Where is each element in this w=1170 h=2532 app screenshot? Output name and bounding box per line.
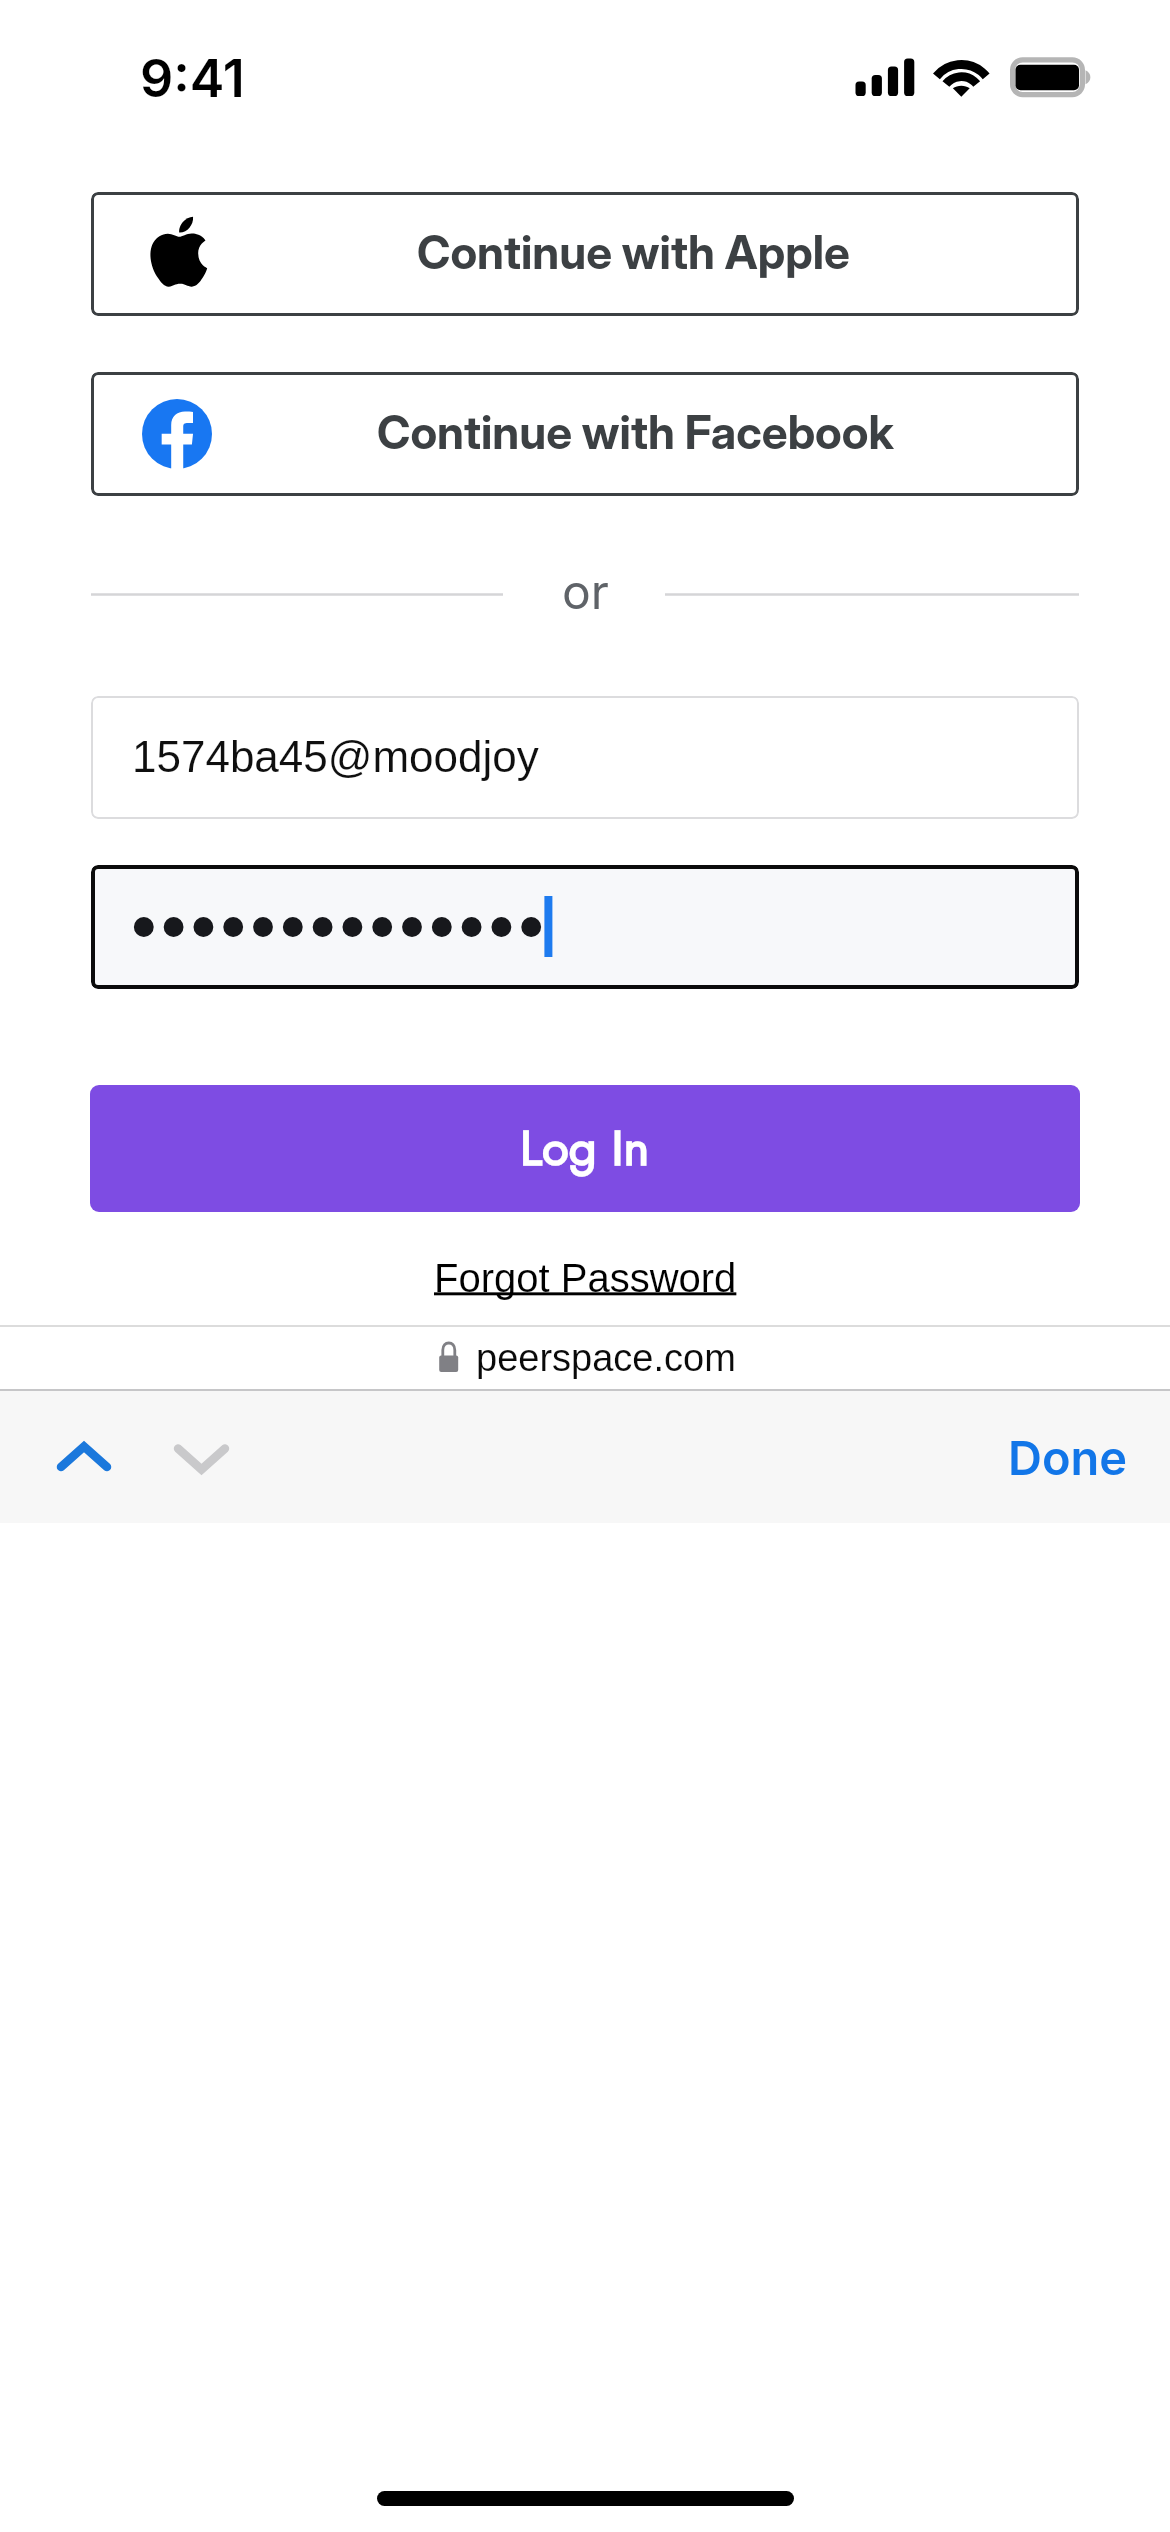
button[interactable]: Continue with Apple xyxy=(91,192,1079,316)
button[interactable]: Previous field xyxy=(20,1397,148,1517)
staticText: Done xyxy=(1008,1429,1128,1486)
staticText: Continue with Facebook xyxy=(377,404,894,460)
button[interactable]: Address bar peerspace.com xyxy=(0,1325,1170,1391)
button[interactable]: Log In xyxy=(90,1085,1080,1212)
button[interactable]: Next field xyxy=(136,1397,264,1517)
staticText: Continue with Apple xyxy=(417,224,850,280)
staticText: Forgot Password xyxy=(434,1256,737,1301)
button[interactable]: Forgot Password xyxy=(426,1252,745,1305)
button[interactable]: Continue with Facebook xyxy=(91,372,1079,496)
button[interactable] xyxy=(91,865,1079,989)
staticText: Log In xyxy=(520,1113,650,1184)
button[interactable]: 1574ba45@moodjoy xyxy=(91,696,1079,819)
staticText: peerspace.com xyxy=(476,1337,736,1379)
button[interactable]: Done xyxy=(995,1407,1141,1507)
staticText: 9:41 xyxy=(140,47,245,110)
staticText: 1574ba45@moodjoy xyxy=(132,732,539,781)
staticText: or xyxy=(562,562,609,620)
